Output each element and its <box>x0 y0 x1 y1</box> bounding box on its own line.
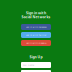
staticText: Log in with Twitter <box>25 33 46 36</box>
staticText: Sign Up <box>29 55 42 59</box>
staticText: Log in with Facebook <box>25 25 46 28</box>
button[interactable]: Log in with Google+ <box>21 40 51 46</box>
staticText: Sign in with <box>26 11 46 15</box>
staticText: Full Name <box>23 63 34 66</box>
button[interactable]: Log in with Twitter <box>21 32 51 38</box>
staticText: Log in with Google+ <box>25 41 46 44</box>
button[interactable]: Log in with Facebook <box>21 24 51 30</box>
staticText: Social Networks <box>21 15 50 19</box>
